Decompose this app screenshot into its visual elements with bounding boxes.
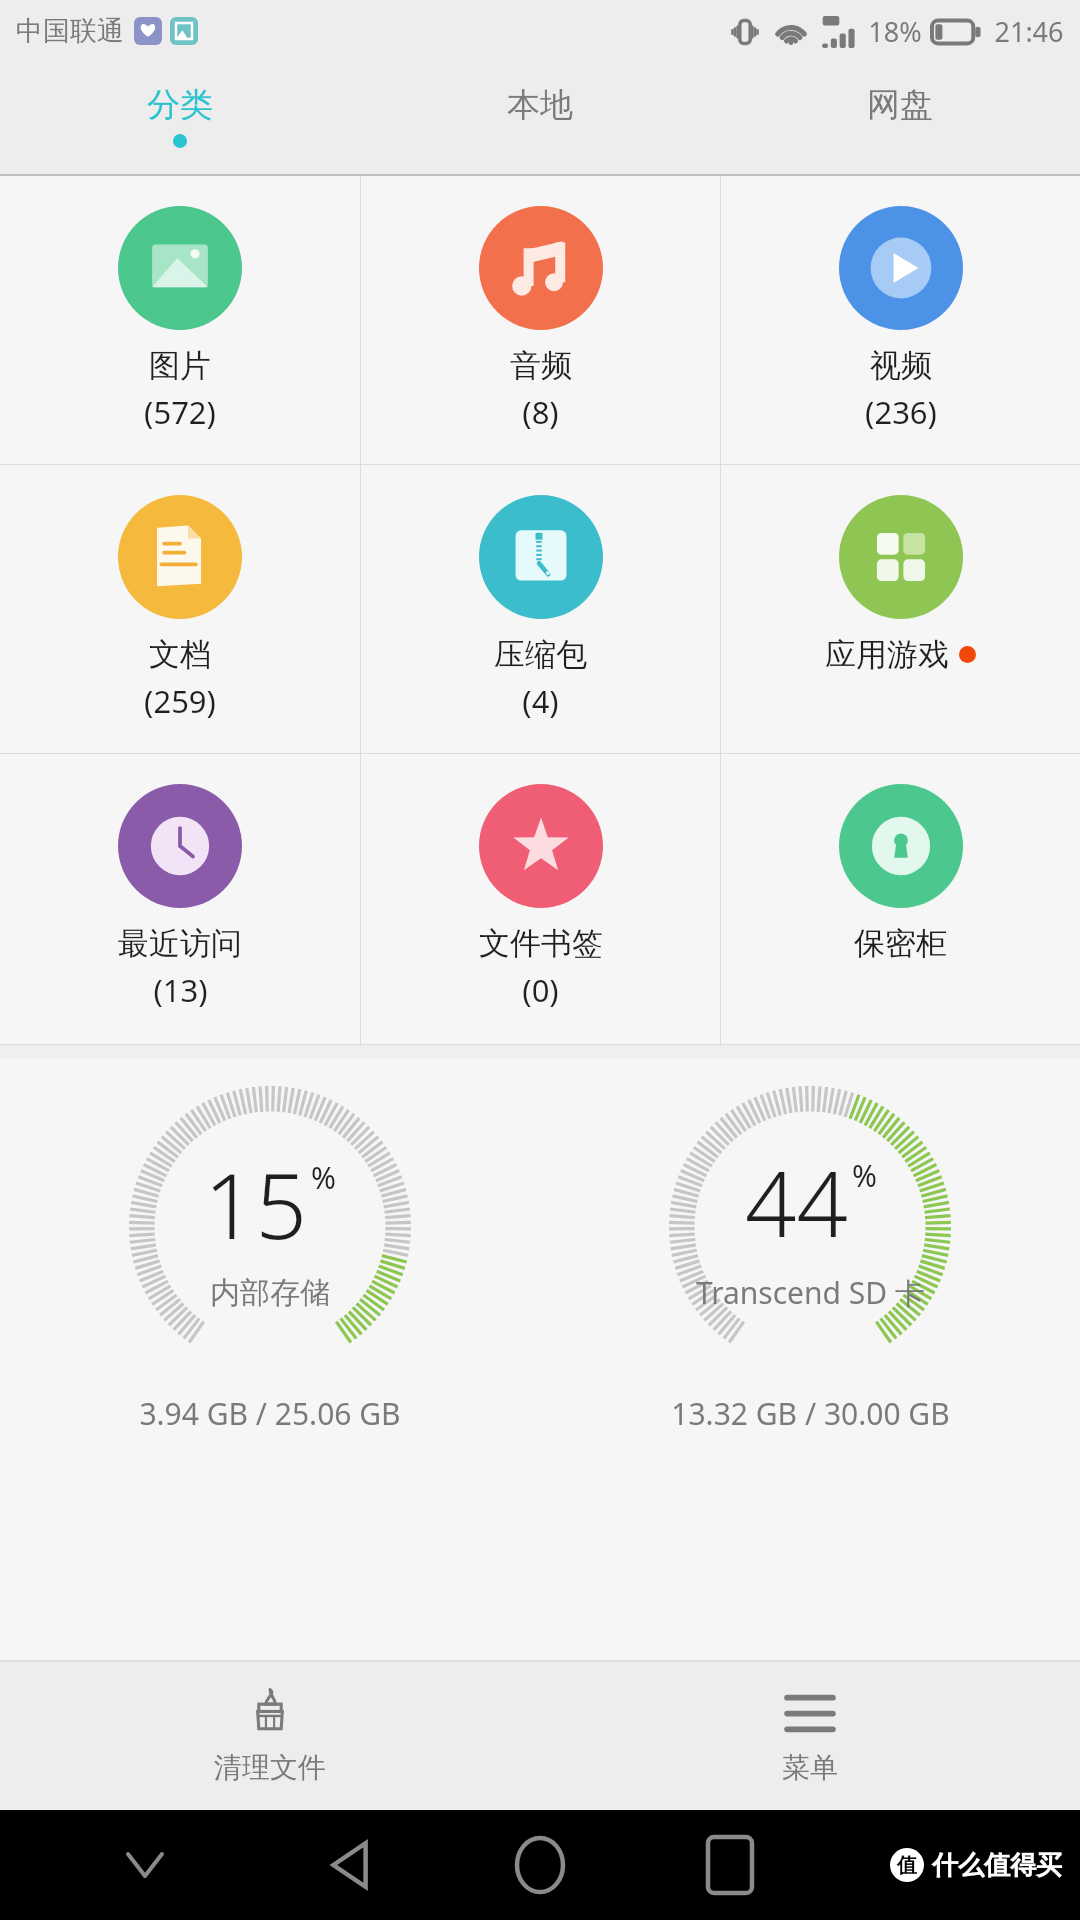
staticText: 音频: [510, 346, 572, 385]
staticText: Transcend SD 卡: [696, 1272, 925, 1313]
staticText: 44: [745, 1141, 848, 1264]
button[interactable]: Hide keyboard: [120, 1840, 170, 1890]
button[interactable]: 应用游戏: [721, 465, 1080, 753]
staticText: 本地: [507, 84, 573, 126]
staticText: (572): [144, 391, 216, 433]
button[interactable]: 本地: [360, 62, 720, 174]
staticText: (13): [153, 969, 208, 1011]
button[interactable]: 44: [540, 1059, 1080, 1529]
button[interactable]: 最近访问: [0, 754, 360, 1044]
button[interactable]: Back: [310, 1825, 390, 1905]
staticText: 文件书签: [479, 924, 603, 963]
staticText: 图片: [149, 346, 211, 385]
button[interactable]: 图片: [0, 176, 360, 464]
staticText: 21:46: [994, 13, 1064, 50]
button[interactable]: 菜单: [540, 1662, 1080, 1810]
staticText: 压缩包: [494, 635, 587, 674]
button[interactable]: Home: [500, 1825, 580, 1905]
staticText: 中国联通: [16, 14, 124, 48]
staticText: 菜单: [782, 1750, 838, 1785]
staticText: 什么值得买: [932, 1849, 1062, 1882]
staticText: (259): [144, 680, 216, 722]
staticText: (4): [522, 680, 559, 722]
staticText: 分类: [147, 84, 213, 126]
staticText: 视频: [870, 346, 932, 385]
staticText: %: [852, 1155, 877, 1196]
button[interactable]: 文件书签: [361, 754, 720, 1044]
button[interactable]: 保密柜: [721, 754, 1080, 1044]
button[interactable]: 分类: [0, 62, 360, 174]
staticText: %: [311, 1157, 336, 1198]
button[interactable]: 清理文件: [0, 1662, 540, 1810]
staticText: 应用游戏: [825, 635, 949, 674]
staticText: 清理文件: [214, 1750, 326, 1785]
staticText: 3.94 GB / 25.06 GB: [139, 1393, 401, 1434]
staticText: 值: [897, 1853, 917, 1878]
button[interactable]: 压缩包: [361, 465, 720, 753]
staticText: 18%: [868, 13, 922, 50]
staticText: 13.32 GB / 30.00 GB: [671, 1393, 950, 1434]
button[interactable]: 文档: [0, 465, 360, 753]
staticText: (8): [522, 391, 559, 433]
button[interactable]: Recent apps: [690, 1825, 770, 1905]
staticText: (236): [865, 391, 937, 433]
staticText: 文档: [149, 635, 211, 674]
staticText: 最近访问: [118, 924, 242, 963]
button[interactable]: 音频: [361, 176, 720, 464]
button[interactable]: 视频: [721, 176, 1080, 464]
staticText: 内部存储: [210, 1274, 330, 1312]
staticText: 网盘: [867, 84, 933, 126]
button[interactable]: 15: [0, 1059, 540, 1529]
staticText: 15: [204, 1143, 307, 1266]
staticText: (0): [522, 969, 559, 1011]
staticText: 保密柜: [854, 924, 947, 963]
button[interactable]: 网盘: [720, 62, 1080, 174]
